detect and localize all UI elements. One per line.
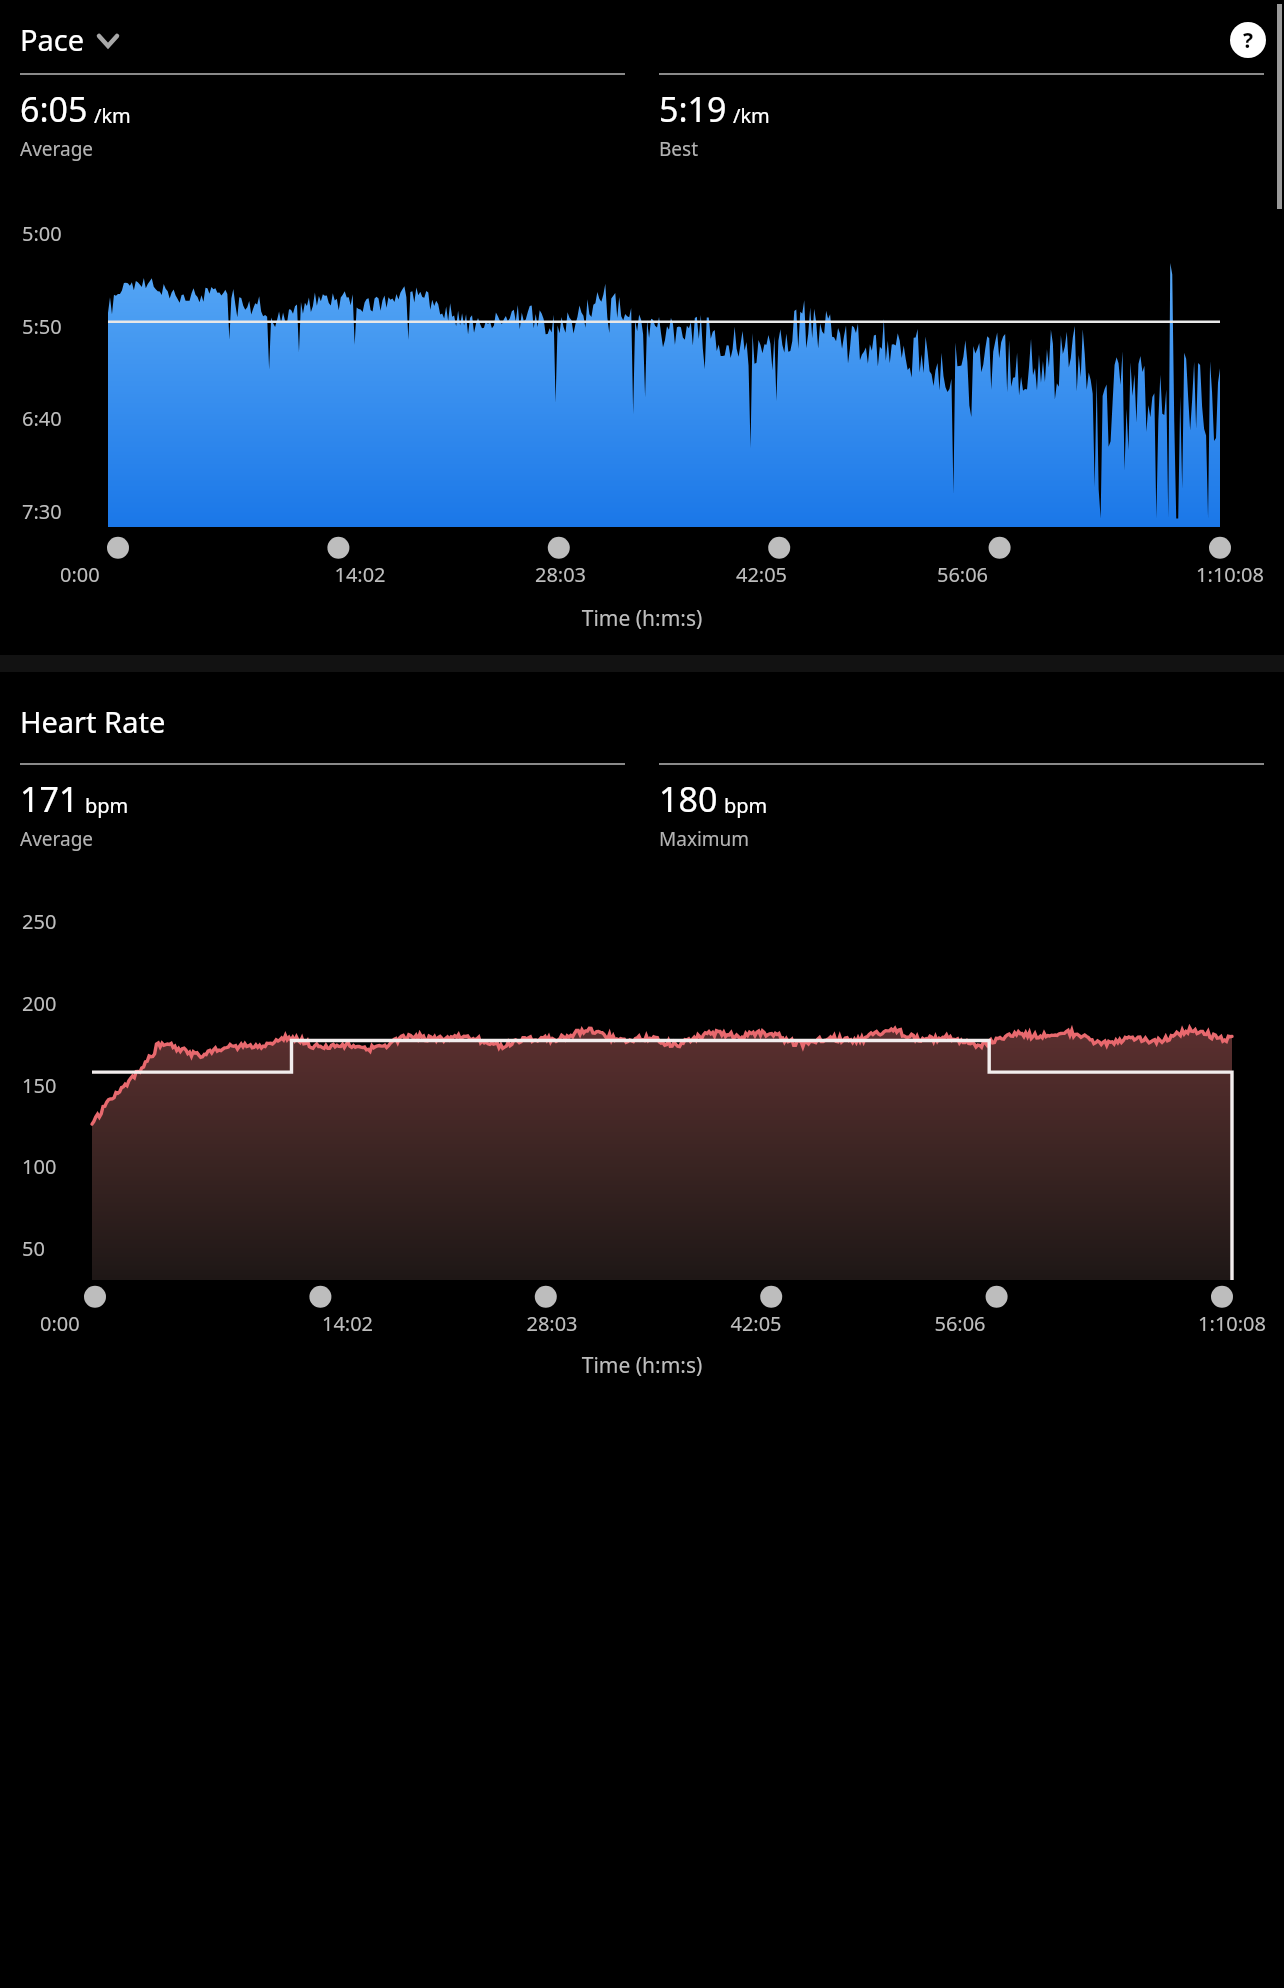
staticText: 0:00 xyxy=(40,1310,245,1337)
staticText: Average xyxy=(20,826,94,852)
staticText: bpm xyxy=(85,792,129,819)
staticText: /km xyxy=(733,102,770,129)
button[interactable]: 5:19 xyxy=(659,73,1264,162)
staticText: 1:10:08 xyxy=(1063,561,1264,588)
staticText: 6:05 xyxy=(20,86,88,132)
staticText: 14:02 xyxy=(245,1310,450,1337)
button[interactable]: 180 xyxy=(659,763,1264,852)
staticText: 150 xyxy=(22,1072,57,1099)
staticText: 56:06 xyxy=(862,561,1063,588)
staticText: 5:19 xyxy=(659,86,727,132)
staticText: ? xyxy=(1243,26,1254,55)
button[interactable]: 6:05 xyxy=(20,73,625,162)
staticText: 28:03 xyxy=(450,1310,654,1337)
staticText: 1:10:08 xyxy=(1062,1310,1266,1337)
staticText: 171 xyxy=(20,776,79,822)
staticText: Time (h:m:s) xyxy=(0,1351,1284,1380)
staticText: 250 xyxy=(22,908,57,935)
staticText: 200 xyxy=(22,990,57,1017)
button[interactable]: Pace xyxy=(20,20,121,59)
staticText: 5:50 xyxy=(22,313,62,340)
staticText: 0:00 xyxy=(60,561,260,588)
button[interactable]: Help xyxy=(1230,22,1266,58)
staticText: 56:06 xyxy=(858,1310,1062,1337)
staticText: Heart Rate xyxy=(20,702,166,741)
staticText: Maximum xyxy=(659,826,750,852)
staticText: 28:03 xyxy=(460,561,661,588)
staticText: Time (h:m:s) xyxy=(0,604,1284,633)
staticText: Pace xyxy=(20,20,85,59)
staticText: Best xyxy=(659,136,699,162)
staticText: 180 xyxy=(659,776,718,822)
staticText: Average xyxy=(20,136,94,162)
staticText: 14:02 xyxy=(260,561,460,588)
button[interactable]: 171 xyxy=(20,763,625,852)
staticText: 5:00 xyxy=(22,220,62,247)
staticText: 6:40 xyxy=(22,405,62,432)
staticText: 7:30 xyxy=(22,498,62,525)
staticText: /km xyxy=(94,102,131,129)
staticText: 42:05 xyxy=(654,1310,858,1337)
staticText: 42:05 xyxy=(661,561,862,588)
staticText: bpm xyxy=(724,792,768,819)
staticText: 100 xyxy=(22,1153,57,1180)
staticText: 50 xyxy=(22,1235,45,1262)
